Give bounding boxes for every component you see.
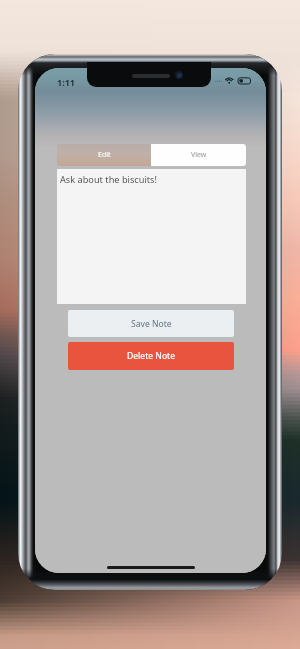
staticText: 1:11 bbox=[57, 76, 75, 88]
button[interactable]: Save Note bbox=[68, 310, 234, 337]
staticText: Ask about the biscuits! bbox=[60, 173, 157, 186]
button[interactable]: Edit bbox=[57, 144, 151, 166]
staticText: Save Note bbox=[131, 318, 172, 330]
button[interactable]: Ask about the biscuits! bbox=[57, 169, 246, 304]
staticText: View bbox=[191, 150, 207, 160]
button[interactable]: View bbox=[151, 144, 246, 166]
button[interactable]: Delete Note bbox=[68, 342, 234, 370]
staticText: Delete Note bbox=[127, 350, 176, 362]
staticText: Edit bbox=[98, 150, 111, 160]
